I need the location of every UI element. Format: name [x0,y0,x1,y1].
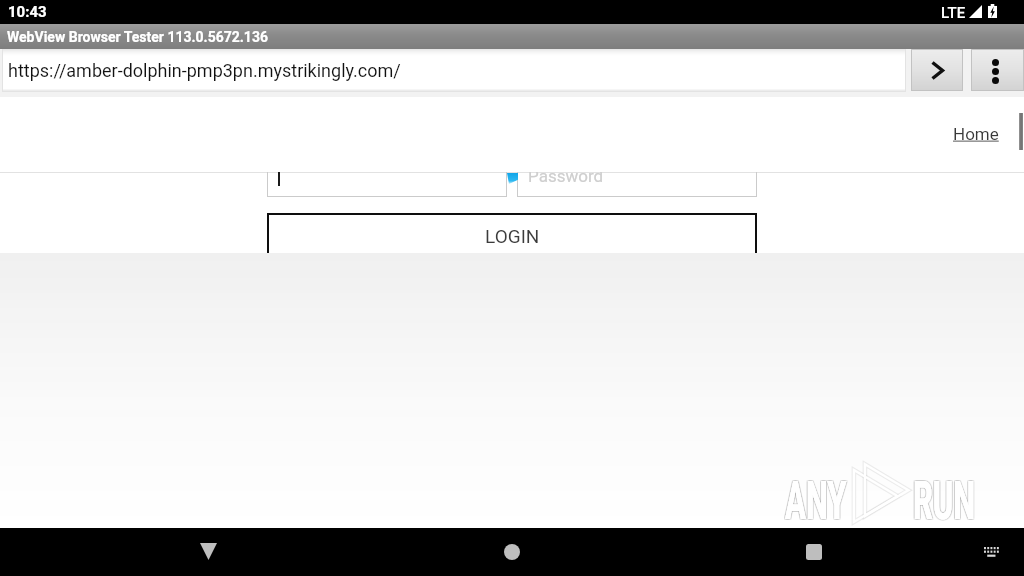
button[interactable]: Go [911,49,963,91]
button[interactable]: Switch keyboard [967,528,1015,576]
staticText: ANY [785,470,847,532]
staticText: ANY [784,471,846,533]
button[interactable]: Home [488,528,536,576]
staticText: RUN [914,470,977,532]
staticText: RUN [914,469,977,531]
staticText: RUN [913,470,976,532]
staticText: ANY [786,471,848,533]
staticText: RUN [913,471,976,533]
button[interactable] [267,171,507,197]
staticText: WebView Browser Tester 113.0.5672.136 [7,29,268,45]
staticText: LOGIN [485,225,540,247]
button[interactable] [517,171,757,197]
button[interactable]: Back [184,528,232,576]
staticText: 10:43 [8,3,47,21]
staticText: ANY [786,470,848,532]
staticText: RUN [912,471,974,533]
button[interactable]: Home [951,124,1001,144]
staticText: RUN [913,469,976,531]
staticText: ANY [785,469,847,531]
button[interactable]: Recent apps [790,528,838,576]
staticText: RUN [912,469,974,531]
button[interactable]: LOGIN [267,213,757,258]
staticText: Home [953,124,999,144]
staticText: RUN [913,470,976,532]
staticText: RUN [914,471,977,533]
staticText: ANY [786,469,848,531]
staticText: ANY [785,470,847,532]
staticText: Password [528,166,604,186]
staticText: ANY [784,469,846,531]
staticText: ANY [784,470,846,532]
staticText: https://amber-dolphin-pmp3pn.mystrikingl… [8,60,401,81]
button[interactable]: More options [971,49,1024,91]
button[interactable]: https://amber-dolphin-pmp3pn.mystrikingl… [2,49,906,92]
staticText: ANY [785,471,847,533]
staticText: LTE [941,4,966,22]
staticText: RUN [912,470,974,532]
